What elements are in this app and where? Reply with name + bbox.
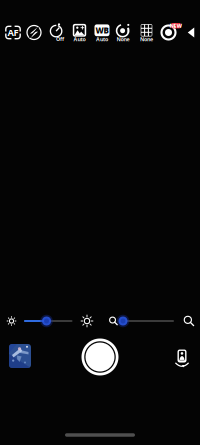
button[interactable]: Collapse controls — [182, 20, 200, 44]
button[interactable]: Switch camera — [169, 343, 195, 369]
button[interactable]: Photo library — [3, 339, 37, 373]
button[interactable]: Timer off — [46, 20, 67, 44]
staticText: Auto — [73, 36, 85, 43]
button[interactable]: Noise reduction none — [112, 20, 133, 44]
staticText: NEW — [169, 22, 182, 29]
button[interactable]: New mode — [158, 20, 179, 44]
button[interactable]: Take photo — [78, 335, 122, 379]
staticText: WB — [95, 25, 108, 36]
button[interactable]: Auto focus — [2, 20, 23, 44]
button[interactable]: Grid none — [136, 20, 157, 44]
staticText: Off — [56, 35, 64, 42]
button[interactable]: Scene auto — [69, 20, 90, 44]
button[interactable]: White balance auto — [91, 20, 112, 44]
staticText: AF — [7, 26, 18, 39]
staticText: Auto — [96, 36, 108, 43]
staticText: None — [116, 36, 129, 43]
button[interactable]: Flash off — [23, 20, 44, 44]
staticText: None — [140, 36, 153, 43]
